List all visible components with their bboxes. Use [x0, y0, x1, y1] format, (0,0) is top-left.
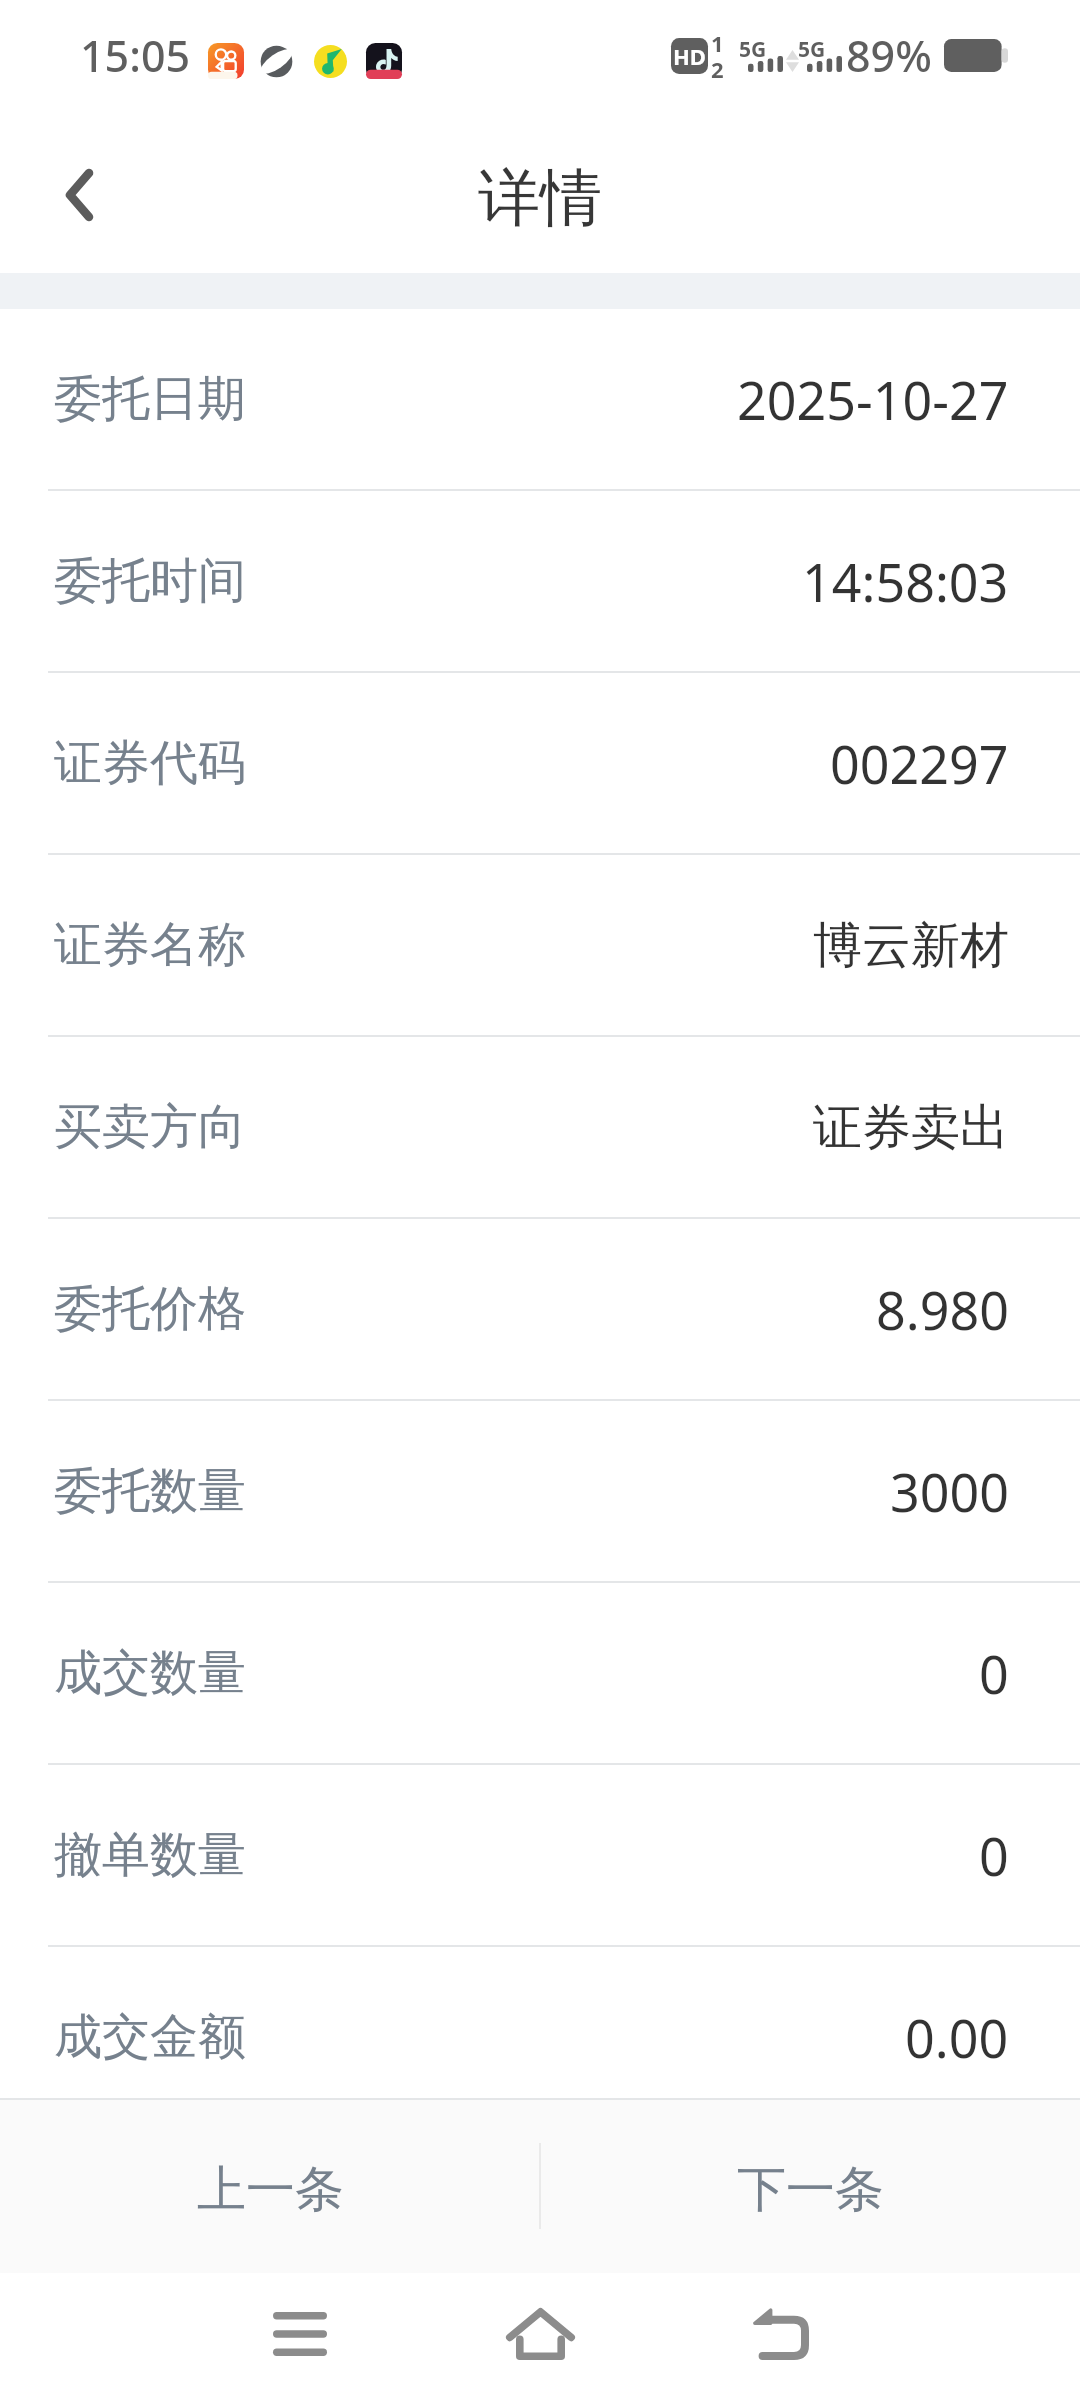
staticText: 证券卖出: [813, 1097, 1009, 1159]
staticText: HD: [673, 41, 706, 71]
button[interactable]: 委托时间: [0, 491, 1080, 671]
staticText: 14:58:03: [802, 546, 1009, 617]
staticText: 证券名称: [54, 915, 246, 975]
button[interactable]: Back: [28, 138, 136, 246]
staticText: 15:05: [80, 26, 191, 85]
button[interactable]: 证券名称: [0, 855, 1080, 1035]
button[interactable]: 证券代码: [0, 673, 1080, 853]
button[interactable]: 撤单数量: [0, 1765, 1080, 1945]
staticText: 买卖方向: [54, 1097, 246, 1157]
staticText: 委托数量: [54, 1461, 246, 1521]
button[interactable]: Back: [660, 2270, 900, 2397]
staticText: 0.00: [905, 2002, 1009, 2073]
button[interactable]: Home: [420, 2270, 660, 2397]
staticText: 委托价格: [54, 1279, 246, 1339]
staticText: 8.980: [876, 1274, 1009, 1345]
staticText: 委托日期: [54, 369, 246, 429]
staticText: 89%: [846, 26, 932, 85]
button[interactable]: 委托价格: [0, 1219, 1080, 1399]
staticText: 002297: [830, 728, 1009, 799]
button[interactable]: 买卖方向: [0, 1037, 1080, 1217]
staticText: 上一条: [197, 2159, 344, 2221]
button[interactable]: 下一条: [540, 2098, 1080, 2273]
staticText: 2025-10-27: [737, 364, 1009, 435]
staticText: 委托时间: [54, 551, 246, 611]
staticText: 撤单数量: [54, 1825, 246, 1885]
staticText: 5G: [798, 35, 826, 64]
button[interactable]: 成交数量: [0, 1583, 1080, 1763]
button[interactable]: 委托日期: [0, 309, 1080, 489]
staticText: 5G: [739, 35, 767, 64]
button[interactable]: 成交金额: [0, 1947, 1080, 2127]
staticText: 成交数量: [54, 1643, 246, 1703]
staticText: 3000: [890, 1456, 1009, 1527]
button[interactable]: 委托数量: [0, 1401, 1080, 1581]
staticText: 0: [979, 1638, 1009, 1709]
staticText: 成交金额: [54, 2007, 246, 2067]
staticText: 下一条: [737, 2159, 884, 2221]
staticText: 详情: [478, 159, 602, 237]
staticText: 1: [711, 28, 724, 58]
staticText: 博云新材: [813, 915, 1009, 977]
button[interactable]: Recent apps: [180, 2270, 420, 2397]
staticText: 2: [711, 54, 724, 84]
staticText: 证券代码: [54, 733, 246, 793]
staticText: 0: [979, 1820, 1009, 1891]
button[interactable]: 上一条: [0, 2098, 540, 2273]
